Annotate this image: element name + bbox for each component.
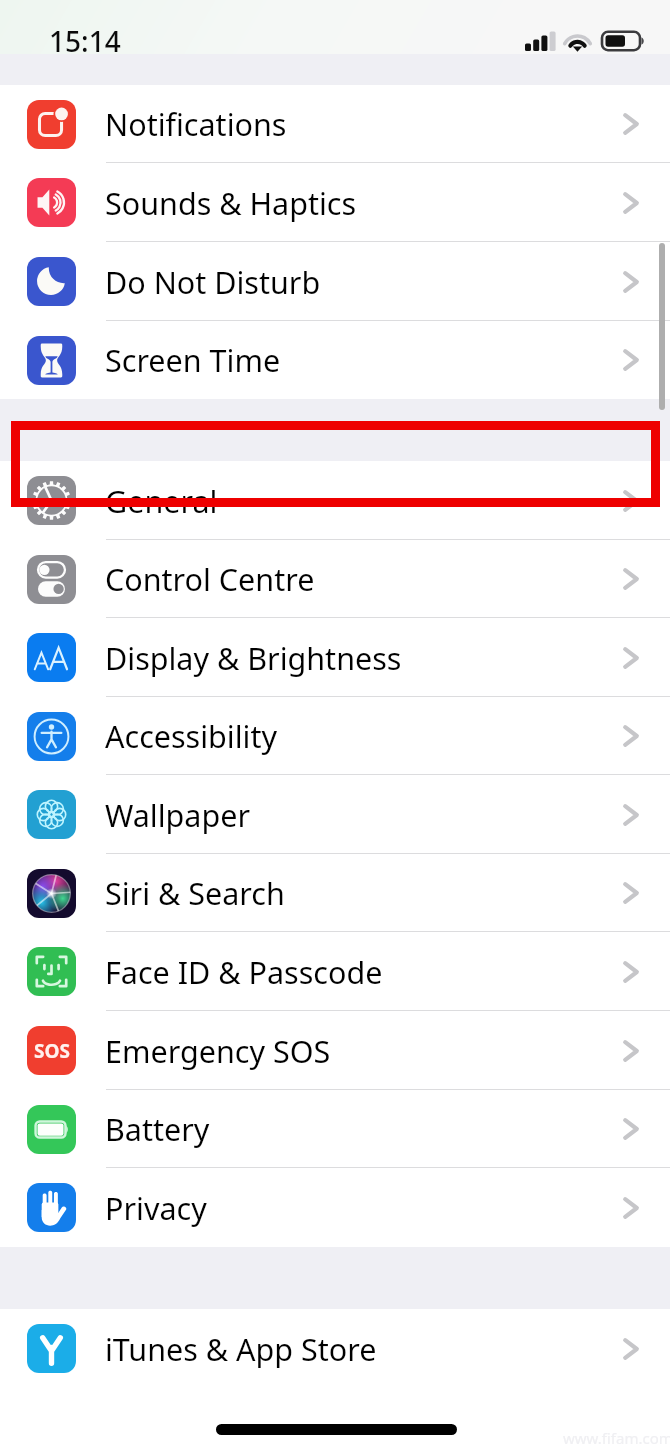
other: Notifications icon (27, 100, 76, 149)
staticText: General (105, 480, 218, 522)
other: Control Centre icon (27, 555, 76, 604)
other: Battery icon (27, 1105, 76, 1154)
button[interactable]: Display & Brightness icon (0, 618, 670, 697)
button[interactable]: Do Not Disturb icon (0, 242, 670, 321)
staticText: Do Not Disturb (105, 261, 321, 303)
other: Privacy icon (27, 1183, 76, 1232)
other: Display & Brightness icon (27, 633, 76, 682)
other: Emergency SOS icon (27, 1026, 76, 1075)
button[interactable]: Privacy icon (0, 1168, 670, 1247)
button[interactable]: Notifications icon (0, 85, 670, 163)
other: Face ID & Passcode icon (27, 947, 76, 996)
staticText: Settings (277, 101, 396, 140)
staticText: Accessibility (105, 715, 277, 757)
button[interactable]: General icon (0, 461, 670, 540)
other: Sounds & Haptics icon (27, 178, 76, 227)
staticText: Sounds & Haptics (105, 182, 357, 224)
button[interactable]: iTunes & App Store icon (0, 1309, 670, 1388)
staticText: Control Centre (105, 558, 315, 600)
button[interactable]: Siri & Search icon (0, 854, 670, 932)
staticText: Battery (105, 1108, 210, 1150)
staticText: Siri & Search (105, 872, 285, 914)
button[interactable]: Accessibility icon (0, 697, 670, 775)
other: Accessibility icon (27, 712, 76, 761)
button[interactable]: Battery icon (0, 1090, 670, 1168)
staticText: iTunes & App Store (105, 1328, 377, 1370)
staticText: Emergency SOS (105, 1030, 331, 1072)
staticText: www.fifam.com (563, 1428, 670, 1448)
other: Siri & Search icon (27, 869, 76, 918)
other: Screen Time icon (27, 336, 76, 385)
button[interactable]: Wallpaper icon (0, 775, 670, 854)
staticText: Display & Brightness (105, 637, 402, 679)
button[interactable]: Emergency SOS icon (0, 1011, 670, 1090)
staticText: Screen Time (105, 339, 281, 381)
staticText: Face ID & Passcode (105, 951, 383, 993)
other: iTunes & App Store icon (27, 1324, 76, 1373)
staticText: Privacy (105, 1187, 207, 1229)
button[interactable]: Sounds & Haptics icon (0, 163, 670, 242)
other: Wallpaper icon (27, 790, 76, 839)
button[interactable]: Screen Time icon (0, 321, 670, 399)
staticText: SOS (34, 1038, 70, 1064)
staticText: Wallpaper (105, 794, 251, 836)
staticText: 15:14 (49, 22, 121, 60)
staticText: Notifications (105, 103, 287, 145)
button[interactable]: Control Centre icon (0, 540, 670, 618)
other: Do Not Disturb icon (27, 257, 76, 306)
other: General icon (27, 476, 76, 525)
button[interactable]: Face ID & Passcode icon (0, 932, 670, 1011)
